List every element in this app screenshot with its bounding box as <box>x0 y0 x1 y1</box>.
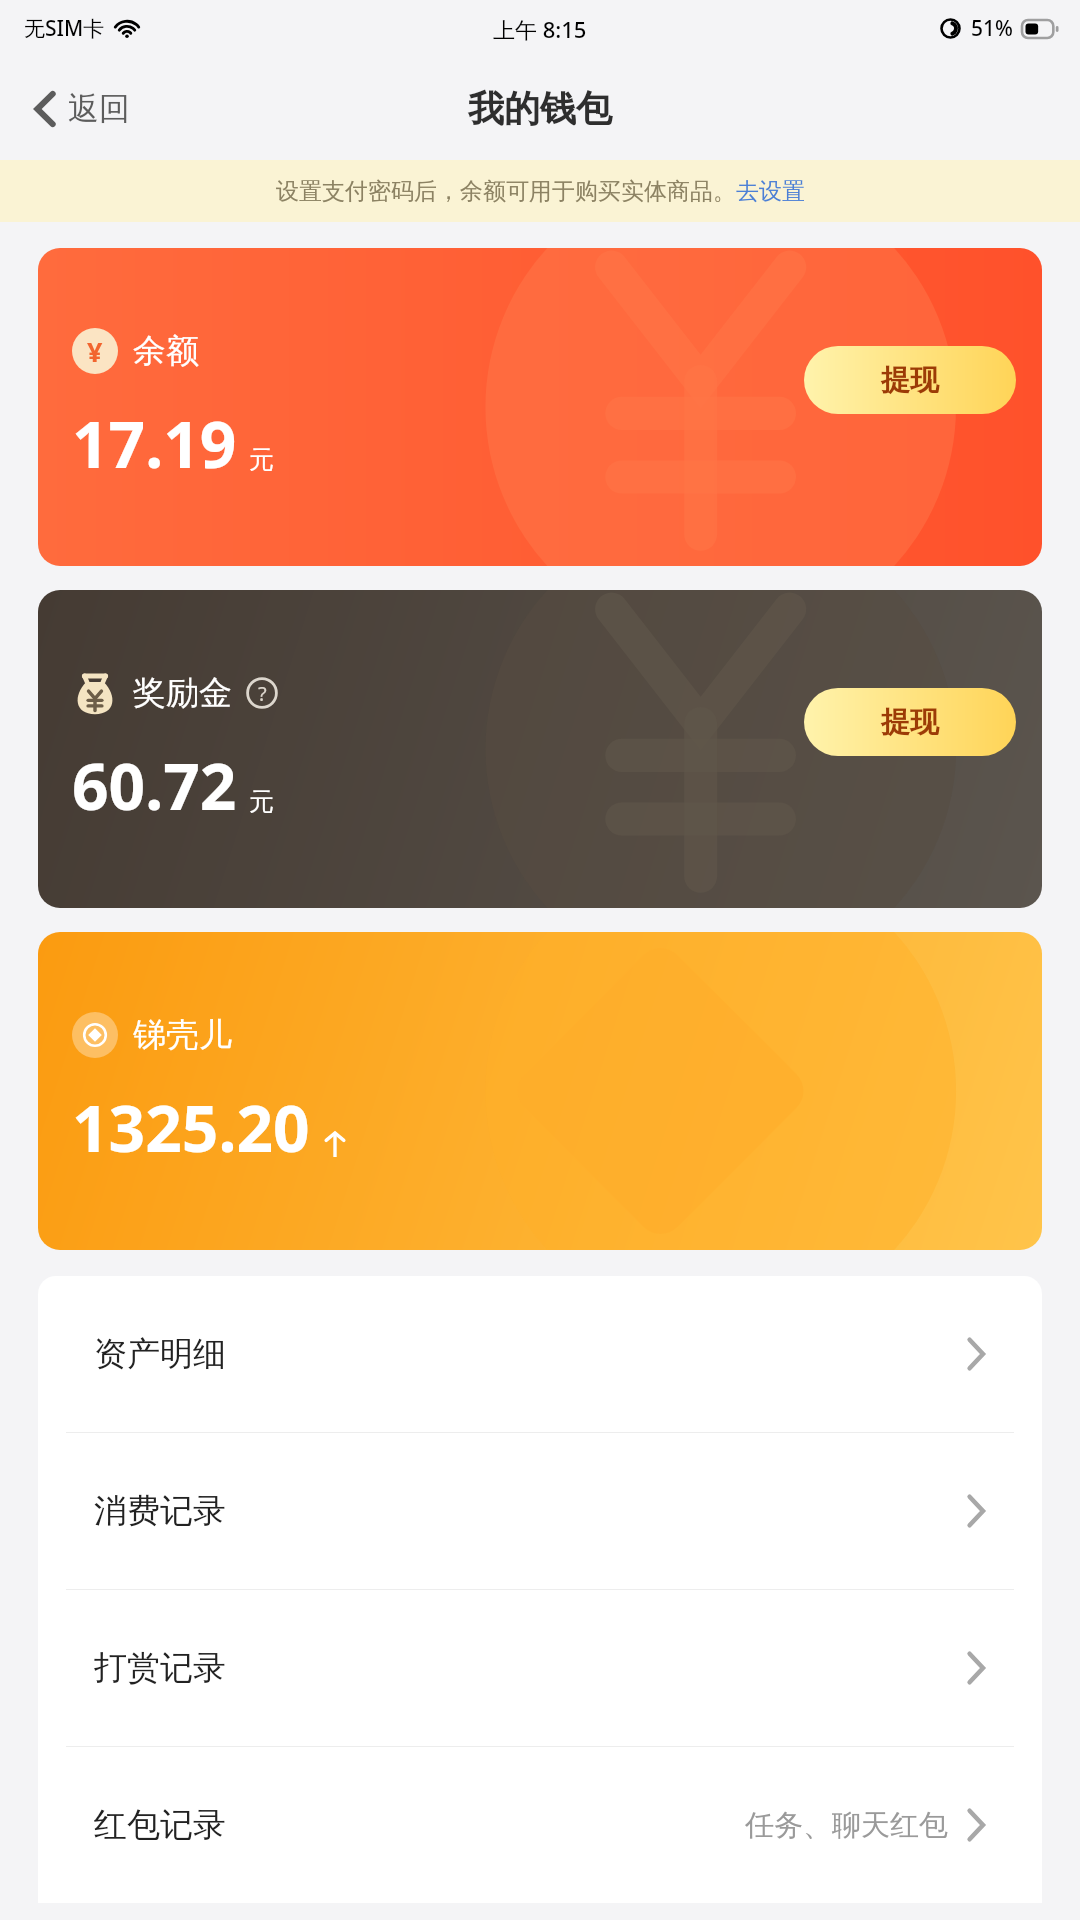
button[interactable]: 设置支付密码后，余额可用于购买实体商品。 <box>0 160 1080 222</box>
staticText: 我的钱包 <box>468 86 612 131</box>
staticText: 锑壳儿 <box>133 1014 232 1056</box>
button[interactable]: 打赏记录 <box>38 1589 1042 1746</box>
staticText: 无SIM卡 <box>24 14 105 43</box>
button[interactable]: ¥ <box>38 248 1042 566</box>
button[interactable]: 返回 <box>26 79 138 138</box>
staticText: 设置支付密码后，余额可用于购买实体商品。 <box>276 177 736 206</box>
staticText: 资产明细 <box>94 1333 226 1375</box>
staticText: 60.72 <box>72 742 237 829</box>
staticText: 奖励金 <box>133 672 232 714</box>
staticText: 元 <box>249 786 274 817</box>
staticText: ? <box>258 680 267 707</box>
staticText: 红包记录 <box>94 1804 226 1846</box>
staticText: 51% <box>971 14 1013 43</box>
button[interactable]: 提现 <box>804 346 1016 414</box>
staticText: 打赏记录 <box>94 1647 226 1689</box>
staticText: 提现 <box>881 704 939 741</box>
staticText: 任务、聊天红包 <box>745 1807 948 1844</box>
button[interactable]: 奖励金说明 <box>246 677 278 709</box>
staticText: 去设置 <box>736 177 805 206</box>
staticText: ¥ <box>87 333 103 370</box>
staticText: 上午 8:15 <box>493 14 587 44</box>
button[interactable]: 锑壳儿 <box>38 932 1042 1250</box>
button[interactable]: 消费记录 <box>38 1432 1042 1589</box>
button[interactable]: 奖励金 <box>38 590 1042 908</box>
staticText: 返回 <box>68 89 130 128</box>
staticText: 元 <box>249 444 274 475</box>
staticText: 17.19 <box>72 400 237 487</box>
staticText: 1325.20 <box>72 1084 310 1171</box>
button[interactable]: 提现 <box>804 688 1016 756</box>
staticText: 余额 <box>133 330 199 372</box>
button[interactable]: 资产明细 <box>38 1276 1042 1432</box>
staticText: 提现 <box>881 362 939 399</box>
button[interactable]: 红包记录 <box>38 1746 1042 1903</box>
staticText: 消费记录 <box>94 1490 226 1532</box>
